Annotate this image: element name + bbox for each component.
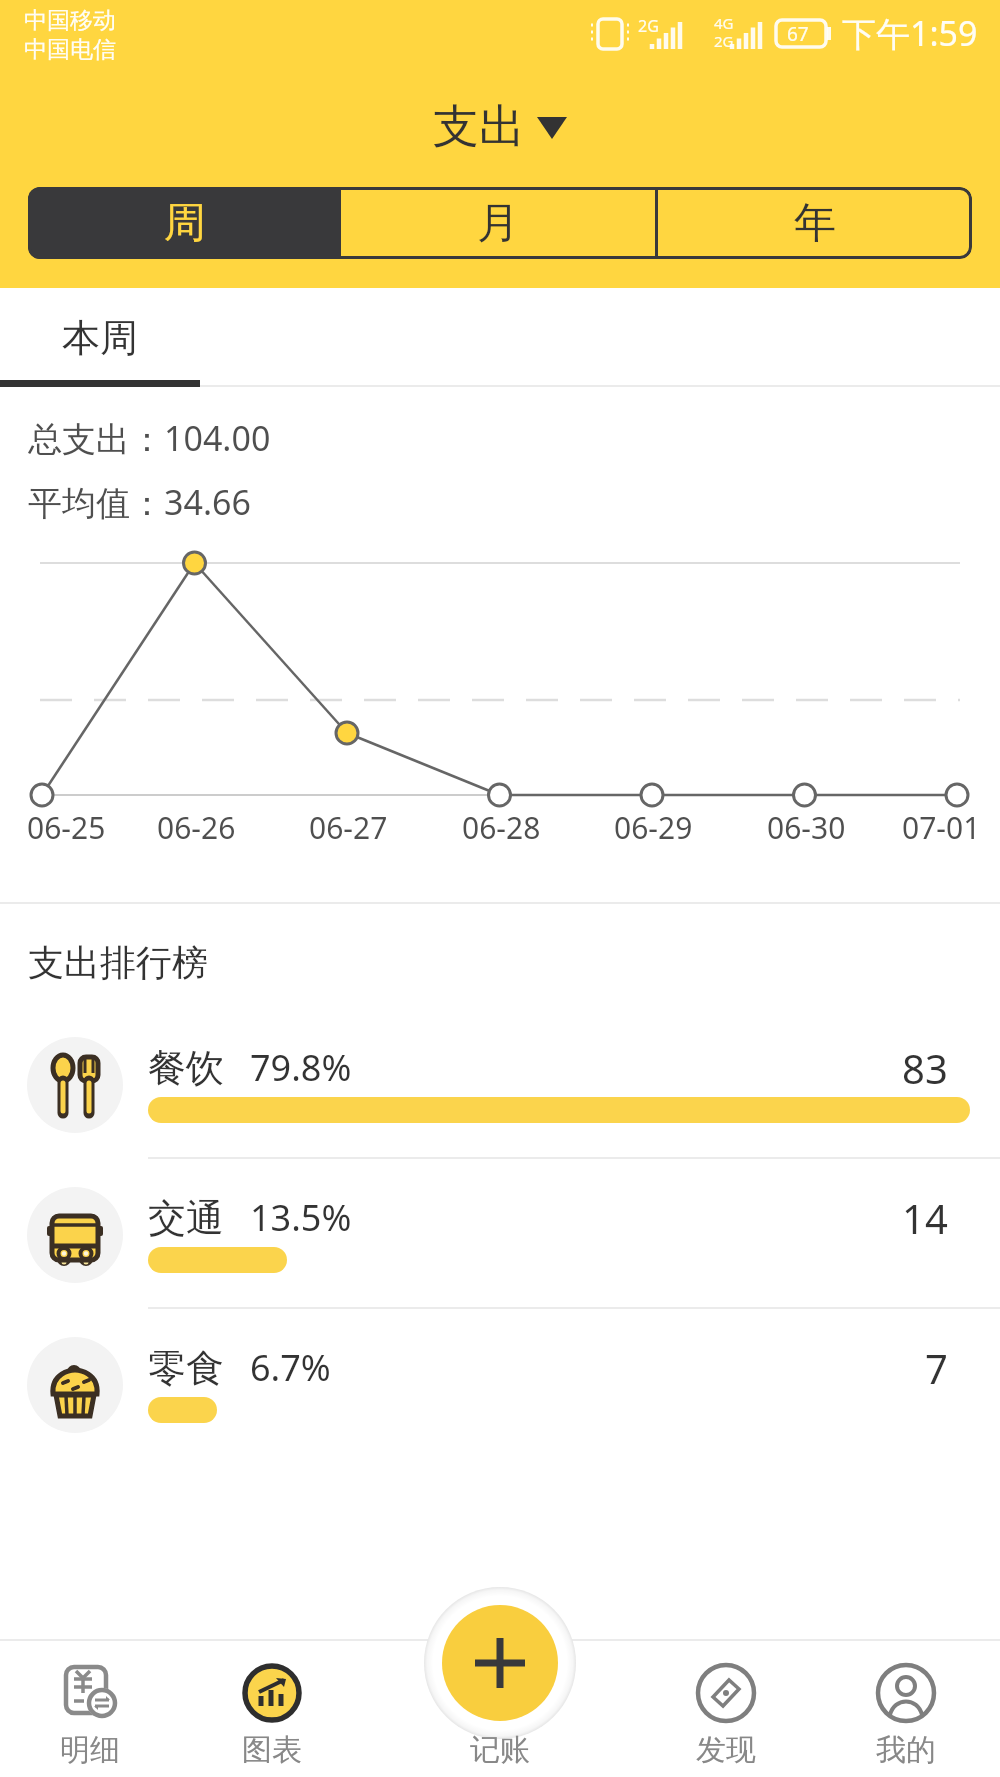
button[interactable]: 零食 <box>0 1309 1000 1459</box>
staticText: 06-28 <box>462 807 541 848</box>
staticText: 13.5% <box>250 1193 352 1242</box>
staticText: 2G <box>638 15 659 37</box>
staticText: 支出排行榜 <box>28 940 208 985</box>
staticText: 06-29 <box>614 807 693 848</box>
button[interactable]: 本周 <box>0 288 200 387</box>
button[interactable]: 明细 <box>25 1641 155 1777</box>
button[interactable] <box>424 1587 576 1739</box>
staticText: 发现 <box>696 1731 756 1769</box>
staticText: 平均值：34.66 <box>28 479 251 525</box>
staticText: 4G <box>714 13 734 33</box>
staticText: 83 <box>902 1041 948 1095</box>
button[interactable]: 周 <box>28 187 341 259</box>
staticText: 本周 <box>62 314 138 362</box>
staticText: 零食 <box>148 1344 224 1392</box>
staticText: 明细 <box>60 1731 120 1769</box>
staticText: 06-27 <box>309 807 388 848</box>
staticText: 图表 <box>242 1731 302 1769</box>
staticText: 7 <box>925 1341 948 1395</box>
staticText: 67 <box>787 21 809 47</box>
staticText: 07-01 <box>902 807 981 848</box>
staticText: 总支出：104.00 <box>28 415 271 461</box>
button[interactable]: 餐饮 <box>0 1009 1000 1159</box>
staticText: 餐饮 <box>148 1044 224 1092</box>
staticText: 周 <box>164 197 206 250</box>
button[interactable]: 交通 <box>0 1159 1000 1309</box>
staticText: 79.8% <box>250 1043 352 1092</box>
staticText: 中国电信 <box>24 35 116 64</box>
button[interactable]: 发现 <box>661 1641 791 1777</box>
staticText: 6.7% <box>250 1343 331 1392</box>
staticText: 06-26 <box>157 807 236 848</box>
button[interactable]: 我的 <box>841 1641 971 1777</box>
button[interactable]: 图表 <box>207 1641 337 1777</box>
staticText: 中国移动 <box>24 6 116 35</box>
staticText: 月 <box>477 197 519 250</box>
button[interactable]: 记账 <box>435 1641 565 1777</box>
staticText: 支出 <box>433 98 525 156</box>
staticText: 06-25 <box>27 807 106 848</box>
staticText: 记账 <box>470 1731 530 1769</box>
staticText: 交通 <box>148 1194 224 1242</box>
staticText: 年 <box>794 197 836 250</box>
button[interactable]: 月 <box>341 187 655 259</box>
staticText: 14 <box>902 1191 948 1245</box>
staticText: 下午1:59 <box>842 10 978 56</box>
button[interactable]: 年 <box>658 187 972 259</box>
staticText: 我的 <box>876 1731 936 1769</box>
staticText: 06-30 <box>767 807 846 848</box>
staticText: 2G <box>714 31 734 51</box>
